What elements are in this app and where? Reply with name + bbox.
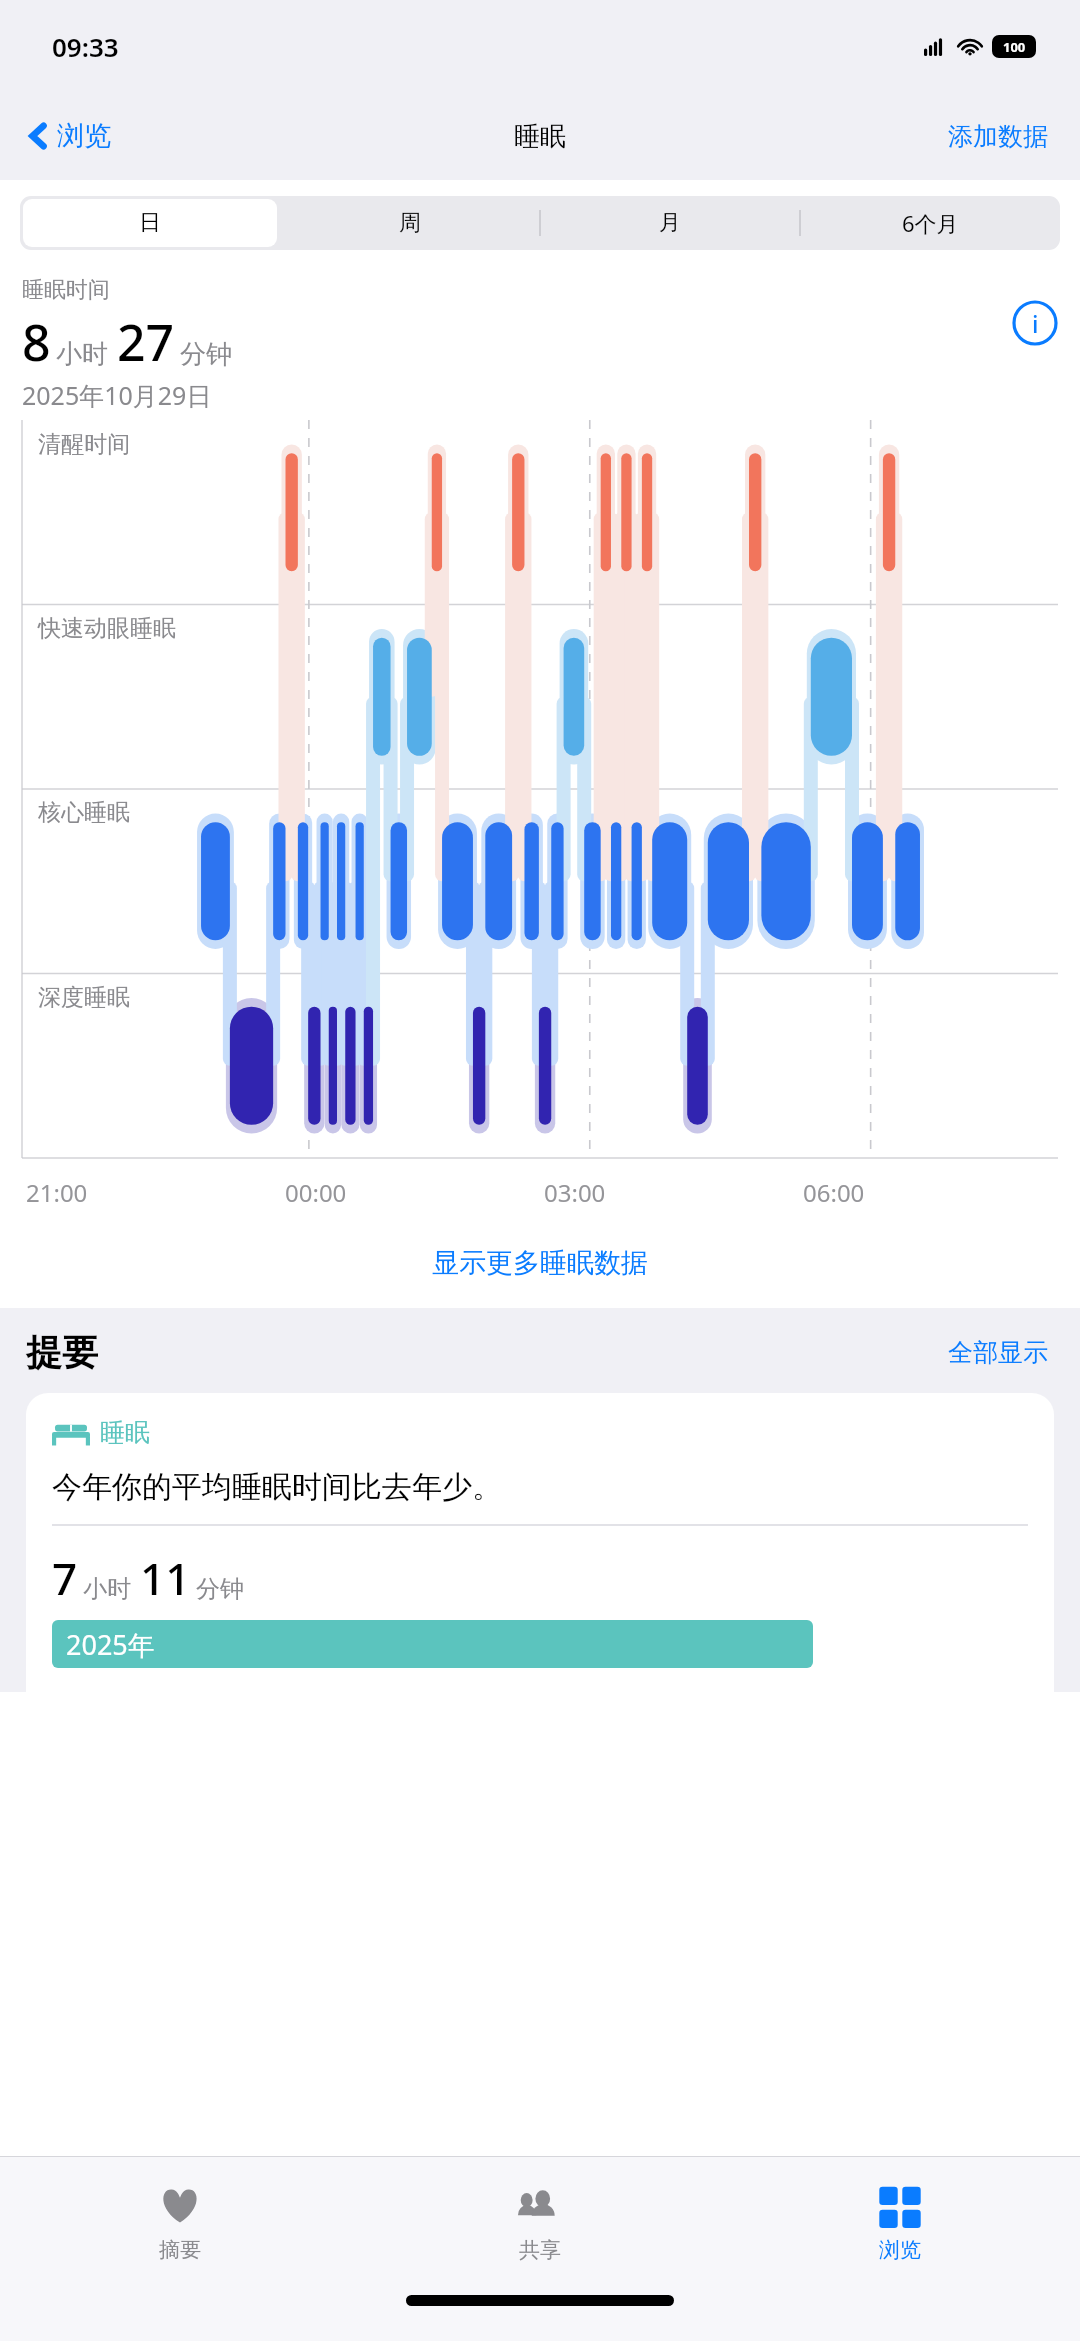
staticText: 小时 [83,1574,131,1604]
staticText: 提要 [26,1330,942,1375]
staticText: 分钟 [180,338,232,371]
staticText: 月 [659,209,681,237]
button[interactable]: 浏览 [720,2157,1080,2289]
staticText: 分钟 [196,1574,244,1604]
staticText: 11 [140,1548,191,1608]
button[interactable]: 睡眠 [26,1393,1054,1692]
staticText: 摘要 [159,2237,201,2263]
staticText: 浏览 [57,119,111,153]
button[interactable]: 日 [23,199,277,247]
staticText: 6个月 [902,208,959,238]
staticText: 日 [139,209,161,237]
staticText: 8 [22,308,51,376]
staticText: 03:00 [544,1176,606,1209]
button[interactable]: 信息 [1012,300,1058,346]
staticText: 周 [399,209,421,237]
staticText: 27 [117,308,175,376]
staticText: 清醒时间 [38,430,130,459]
button[interactable]: 摘要 [0,2157,360,2289]
staticText: i [1032,307,1039,340]
staticText: 核心睡眠 [38,798,130,827]
staticText: 快速动眼睡眠 [38,614,176,643]
staticText: 06:00 [803,1176,865,1209]
staticText: 显示更多睡眠数据 [432,1246,648,1280]
staticText: 09:33 [52,29,119,64]
button[interactable]: 显示更多睡眠数据 [0,1236,1080,1290]
staticText: 浏览 [879,2237,921,2263]
staticText: 今年你的平均睡眠时间比去年少。 [52,1468,502,1506]
staticText: 睡眠 [100,1417,150,1448]
button[interactable]: 共享 [360,2157,720,2289]
staticText: 100 [1003,38,1026,56]
button[interactable]: 浏览 [22,113,117,159]
staticText: 21:00 [26,1176,88,1209]
button[interactable]: 月 [543,199,797,247]
staticText: 睡眠 [514,120,566,153]
staticText: 00:00 [285,1176,347,1209]
staticText: 小时 [56,338,108,371]
staticText: 深度睡眠 [38,983,130,1012]
staticText: 添加数据 [948,121,1048,152]
button[interactable]: 6个月 [803,199,1057,247]
button[interactable]: 全部显示 [942,1331,1054,1374]
staticText: 2025年10月29日 [22,378,212,412]
button[interactable]: 添加数据 [942,115,1054,158]
staticText: 2025年 [66,1626,155,1663]
staticText: 7 [52,1548,78,1608]
button[interactable]: 周 [283,199,537,247]
staticText: 全部显示 [948,1337,1048,1368]
staticText: 共享 [519,2237,561,2263]
staticText: 睡眠时间 [22,276,110,304]
